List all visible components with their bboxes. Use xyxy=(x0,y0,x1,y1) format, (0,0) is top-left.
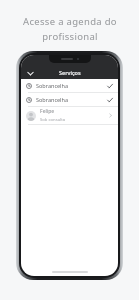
staticText: Sobrancelha xyxy=(36,96,69,103)
button[interactable]: Felipe xyxy=(21,107,118,124)
staticText: Sobrancelha xyxy=(36,82,69,89)
staticText: Acesse a agenda do xyxy=(23,15,117,28)
button[interactable]: Fechar xyxy=(24,67,36,79)
button[interactable]: Sobrancelha xyxy=(21,93,118,106)
button[interactable]: Sobrancelha xyxy=(21,79,118,92)
staticText: Felipe xyxy=(40,108,55,115)
staticText: profissional xyxy=(42,30,98,43)
staticText: Serviços xyxy=(59,69,81,76)
staticText: Sob consulta xyxy=(40,117,66,123)
